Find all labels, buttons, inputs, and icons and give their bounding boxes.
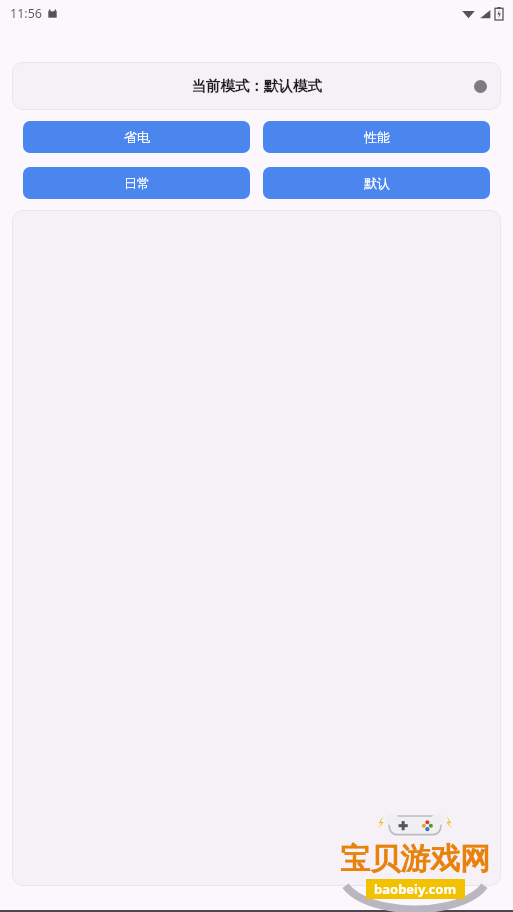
button[interactable]: 性能: [263, 121, 490, 153]
staticText: 11:56: [10, 5, 42, 22]
button[interactable]: 当前模式：默认模式: [12, 62, 501, 110]
button[interactable]: 日常: [23, 167, 250, 199]
staticText: 当前模式：默认模式: [191, 77, 322, 95]
staticText: 默认: [364, 175, 390, 191]
staticText: 省电: [124, 129, 150, 145]
button[interactable]: 省电: [23, 121, 250, 153]
staticText: 宝贝游戏网: [340, 840, 490, 878]
button[interactable]: 默认: [263, 167, 490, 199]
staticText: 性能: [364, 129, 390, 145]
staticText: 日常: [124, 175, 150, 191]
staticText: baobeiy.com: [374, 880, 457, 898]
